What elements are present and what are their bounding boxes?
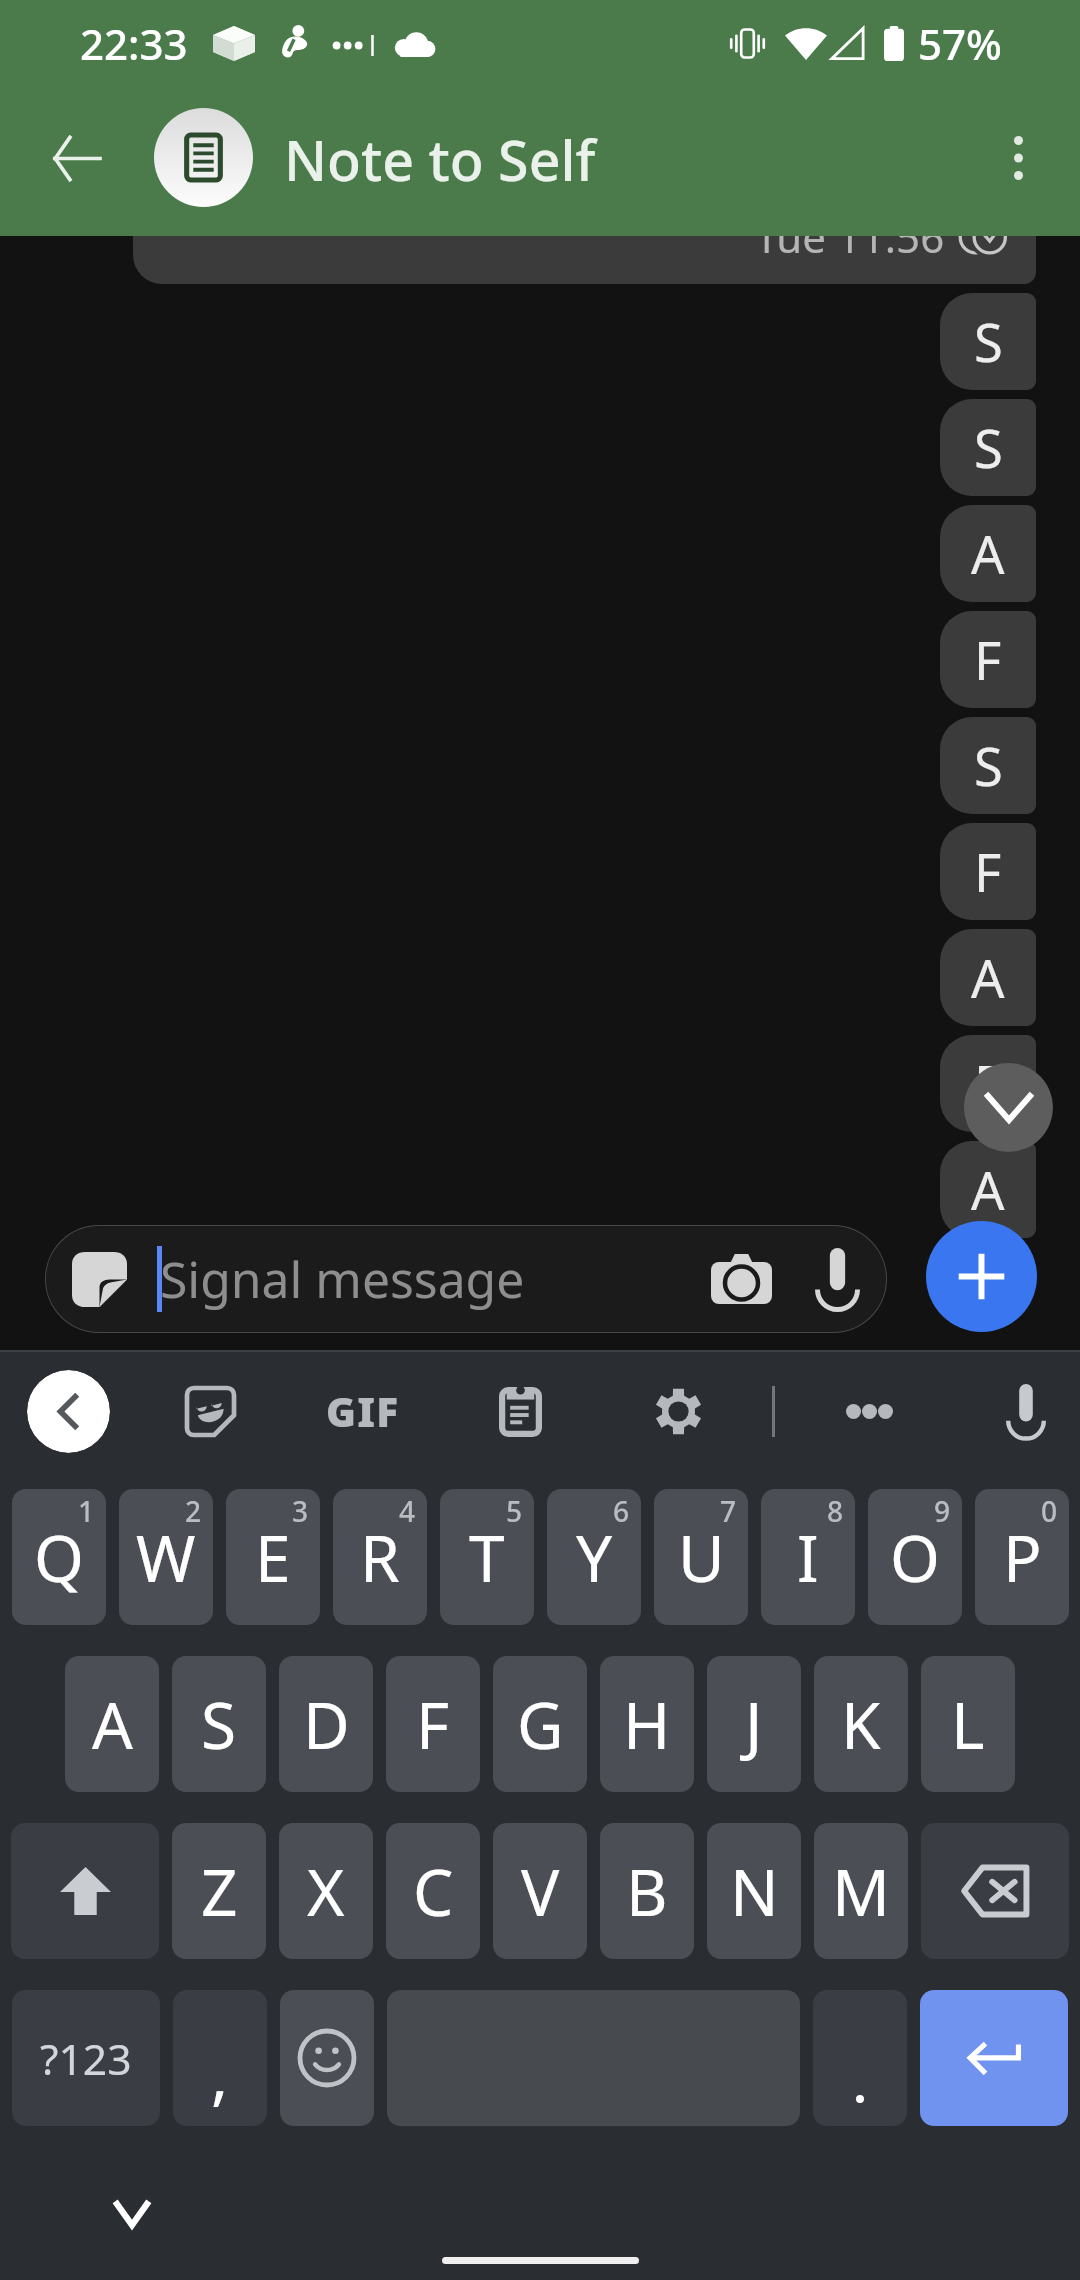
staticText: Z: [201, 1848, 238, 1935]
button[interactable]: M: [814, 1823, 908, 1959]
button[interactable]: Settings: [627, 1360, 729, 1462]
staticText: 2: [185, 1492, 202, 1530]
staticText: 5: [506, 1492, 523, 1530]
button[interactable]: R: [333, 1489, 427, 1625]
button[interactable]: Add attachment: [926, 1221, 1037, 1332]
button[interactable]: V: [493, 1823, 587, 1959]
staticText: N: [730, 1848, 779, 1935]
staticText: H: [623, 1681, 671, 1768]
button[interactable]: A: [940, 929, 1036, 1026]
staticText: M: [832, 1848, 890, 1935]
button[interactable]: A: [940, 1141, 1036, 1238]
button[interactable]: Tue 11:56: [133, 236, 1036, 284]
button[interactable]: F: [940, 823, 1036, 920]
staticText: A: [971, 518, 1005, 590]
button[interactable]: S: [172, 1656, 266, 1792]
staticText: W: [136, 1514, 196, 1601]
button[interactable]: Y: [547, 1489, 641, 1625]
staticText: GIF: [326, 1384, 400, 1439]
button[interactable]: N: [707, 1823, 801, 1959]
staticText: A: [971, 1154, 1005, 1226]
button[interactable]: Hide keyboard: [84, 2166, 180, 2262]
staticText: 8: [827, 1492, 844, 1530]
button[interactable]: L: [921, 1656, 1015, 1792]
staticText: D: [303, 1681, 350, 1768]
button[interactable]: U: [654, 1489, 748, 1625]
button[interactable]: Signal message: [45, 1225, 887, 1333]
button[interactable]: S: [940, 293, 1036, 390]
staticText: 1: [78, 1492, 95, 1530]
staticText: R: [360, 1514, 400, 1601]
button[interactable]: P: [975, 1489, 1069, 1625]
staticText: 4: [399, 1492, 416, 1530]
button[interactable]: Note to Self avatar: [154, 108, 253, 207]
button[interactable]: Scroll to bottom: [964, 1063, 1053, 1152]
staticText: ,: [211, 2031, 229, 2118]
button[interactable]: D: [279, 1656, 373, 1792]
button[interactable]: B: [600, 1823, 694, 1959]
staticText: T: [469, 1514, 505, 1601]
button[interactable]: More: [818, 1360, 920, 1462]
staticText: S: [974, 412, 1003, 484]
button[interactable]: I: [761, 1489, 855, 1625]
button[interactable]: E: [226, 1489, 320, 1625]
button[interactable]: F: [940, 611, 1036, 708]
button[interactable]: A: [65, 1656, 159, 1792]
staticText: ?123: [40, 2029, 132, 2087]
button[interactable]: X: [279, 1823, 373, 1959]
button[interactable]: G: [493, 1656, 587, 1792]
button[interactable]: K: [814, 1656, 908, 1792]
button[interactable]: [813, 1990, 907, 2126]
button[interactable]: Back: [22, 104, 130, 212]
staticText: J: [745, 1681, 763, 1768]
staticText: 57%: [918, 15, 1002, 72]
button[interactable]: GIF: [312, 1360, 414, 1462]
staticText: O: [890, 1514, 940, 1601]
button[interactable]: Clipboard: [469, 1360, 571, 1462]
button[interactable]: More options: [964, 104, 1072, 212]
button[interactable]: A: [940, 505, 1036, 602]
staticText: L: [951, 1681, 985, 1768]
button[interactable]: Z: [172, 1823, 266, 1959]
staticText: V: [521, 1848, 560, 1935]
staticText: 9: [934, 1492, 951, 1530]
staticText: B: [626, 1848, 668, 1935]
button[interactable]: ?123: [12, 1990, 160, 2126]
button[interactable]: Stickers: [159, 1360, 261, 1462]
staticText: Signal message: [160, 1245, 525, 1313]
button[interactable]: O: [868, 1489, 962, 1625]
button[interactable]: [921, 1823, 1069, 1959]
button[interactable]: Voice input: [975, 1360, 1077, 1462]
button[interactable]: F: [940, 1035, 1036, 1132]
button[interactable]: J: [707, 1656, 801, 1792]
button[interactable]: [11, 1823, 159, 1959]
button[interactable]: W: [119, 1489, 213, 1625]
staticText: 0: [1041, 1492, 1058, 1530]
staticText: A: [92, 1681, 133, 1768]
staticText: S: [974, 730, 1003, 802]
staticText: 6: [613, 1492, 630, 1530]
staticText: 22:33: [80, 15, 188, 72]
button[interactable]: H: [600, 1656, 694, 1792]
staticText: A: [971, 942, 1005, 1014]
staticText: 3: [292, 1492, 309, 1530]
button[interactable]: Voice message: [795, 1237, 879, 1321]
button[interactable]: [280, 1990, 374, 2126]
button[interactable]: ,: [173, 1990, 267, 2126]
button[interactable]: C: [386, 1823, 480, 1959]
staticText: E: [255, 1514, 291, 1601]
staticText: C: [413, 1848, 454, 1935]
button[interactable]: T: [440, 1489, 534, 1625]
button[interactable]: Q: [12, 1489, 106, 1625]
button[interactable]: S: [940, 717, 1036, 814]
button[interactable]: Camera: [696, 1234, 786, 1324]
button[interactable]: S: [940, 399, 1036, 496]
button[interactable]: Back: [27, 1370, 110, 1453]
staticText: K: [841, 1681, 881, 1768]
staticText: G: [517, 1681, 564, 1768]
button[interactable]: [920, 1990, 1068, 2126]
staticText: F: [974, 836, 1002, 908]
staticText: P: [1003, 1514, 1042, 1601]
button[interactable]: F: [386, 1656, 480, 1792]
